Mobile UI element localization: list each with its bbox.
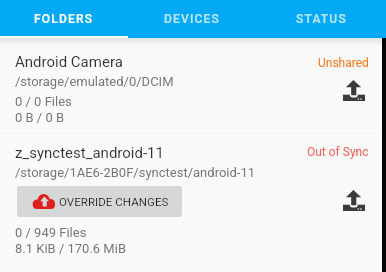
- staticText: /storage/1AE6-2B0F/synctest/android-11: [15, 165, 256, 180]
- staticText: 0 B / 0 B: [15, 110, 65, 125]
- button[interactable]: FOLDERS: [0, 0, 128, 38]
- button[interactable]: z_synctest_android-11: [0, 134, 386, 272]
- staticText: /storage/emulated/0/DCIM: [15, 74, 174, 89]
- staticText: OVERRIDE CHANGES: [59, 195, 169, 208]
- button[interactable]: Sync folder to device: [343, 80, 365, 101]
- staticText: 0 / 0 Files: [15, 94, 72, 109]
- staticText: DEVICES: [164, 12, 221, 26]
- staticText: Out of Sync: [307, 145, 369, 159]
- button[interactable]: DEVICES: [128, 0, 257, 38]
- button[interactable]: Sync folder to device: [343, 190, 365, 211]
- button[interactable]: Android Camera: [0, 38, 386, 133]
- staticText: FOLDERS: [34, 12, 94, 26]
- button[interactable]: STATUS: [257, 0, 386, 38]
- staticText: Android Camera: [15, 53, 123, 71]
- staticText: STATUS: [296, 12, 347, 26]
- staticText: 0 / 949 Files: [15, 225, 87, 240]
- staticText: Unshared: [318, 56, 369, 70]
- staticText: z_synctest_android-11: [15, 144, 164, 162]
- button[interactable]: OVERRIDE CHANGES: [17, 186, 182, 217]
- staticText: 8.1 KiB / 170.6 MiB: [15, 241, 126, 256]
